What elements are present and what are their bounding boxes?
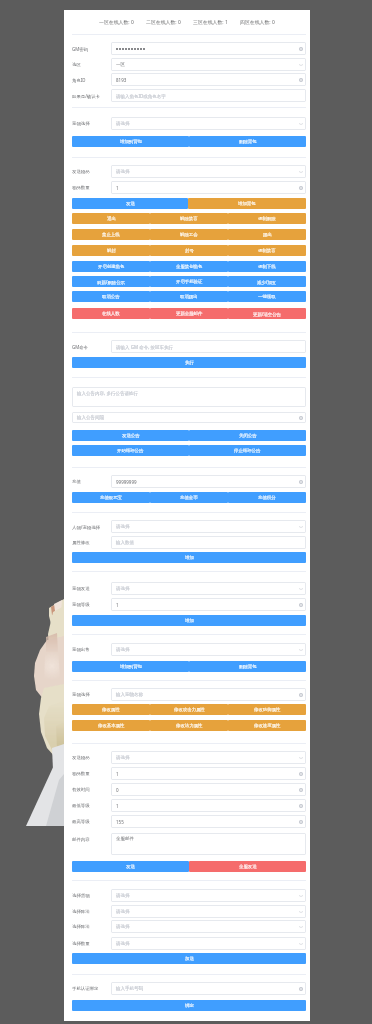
button[interactable]: 取消踢出 xyxy=(150,291,228,302)
staticText: 最低等级 xyxy=(72,803,90,809)
button[interactable]: 请选择 xyxy=(111,905,306,918)
button[interactable]: 解封 xyxy=(72,245,150,256)
staticText: 充值 xyxy=(72,479,81,485)
button[interactable]: 增加 xyxy=(72,552,306,563)
button[interactable]: 发送 xyxy=(72,198,188,209)
staticText: 增加 xyxy=(185,555,194,561)
button[interactable]: 解除工会 xyxy=(150,229,228,240)
button[interactable]: 封号 xyxy=(150,245,228,256)
button[interactable]: 减少/加五 xyxy=(228,276,306,287)
staticText: 三区在线人数: 1 xyxy=(193,19,228,26)
button[interactable]: 1 xyxy=(111,767,306,780)
button[interactable]: 请选择 xyxy=(111,889,306,902)
button[interactable]: 全服禁创角色 xyxy=(150,261,228,272)
button[interactable]: 在线人数 xyxy=(72,308,150,319)
button[interactable]: 加送 xyxy=(72,953,306,964)
button[interactable]: 修改基本属性 xyxy=(72,720,150,731)
staticText: 开启手机验证 xyxy=(176,279,203,285)
button[interactable]: 更新/清空公告 xyxy=(228,308,306,319)
button[interactable]: 踢出 xyxy=(228,229,306,240)
button[interactable]: 强制下线 xyxy=(228,261,306,272)
button[interactable]: 输入公告内容, 多行公告请换行 xyxy=(72,387,306,407)
button[interactable]: 禁止上线 xyxy=(72,229,150,240)
button[interactable]: 99999999 xyxy=(111,475,306,488)
staticText: 输入数值 xyxy=(116,540,134,546)
button[interactable]: 请选择 xyxy=(111,520,306,533)
button[interactable]: 开始循环公告 xyxy=(72,445,189,456)
button[interactable]: 全服邮件 xyxy=(111,833,306,855)
button[interactable]: 输入宠物名称 xyxy=(111,688,306,701)
staticText: 修改攻击力属性 xyxy=(174,707,205,713)
staticText: 发送 xyxy=(126,864,135,870)
button[interactable]: 充值积分 xyxy=(228,492,306,503)
button[interactable]: 绑定 xyxy=(72,1000,306,1011)
button[interactable]: 强制禁言 xyxy=(228,245,306,256)
button[interactable]: 请选择 xyxy=(111,643,306,656)
button[interactable]: 删除背包 xyxy=(189,661,306,672)
button[interactable]: 增加背包 xyxy=(188,198,306,209)
button[interactable]: 请选择 xyxy=(111,165,306,178)
button[interactable]: 1 xyxy=(111,799,306,812)
button[interactable]: 开启创建角色 xyxy=(72,261,150,272)
button[interactable]: 8193 xyxy=(111,73,306,86)
staticText: 输入公告间隔 xyxy=(77,415,104,421)
button[interactable]: 1 xyxy=(111,598,306,611)
button[interactable]: 发送公告 xyxy=(72,430,189,441)
button[interactable]: 1 xyxy=(111,181,306,194)
button[interactable]: 修改防御属性 xyxy=(228,704,306,715)
button[interactable]: 输入公告间隔 xyxy=(72,412,306,423)
staticText: 充值金币 xyxy=(180,495,198,501)
button[interactable]: 开启手机验证 xyxy=(150,276,228,287)
button[interactable]: 一区 xyxy=(111,58,306,71)
button[interactable]: 请输入 GM 命令, 按回车执行 xyxy=(111,340,306,353)
button[interactable]: 请选择 xyxy=(111,117,306,130)
button[interactable]: 解除禁言 xyxy=(150,213,228,224)
staticText: 修改法力属性 xyxy=(176,723,203,729)
staticText: 发送物品 xyxy=(72,169,90,175)
staticText: 停止循环公告 xyxy=(234,448,261,454)
staticText: 请选择 xyxy=(116,893,130,899)
staticText: 取消公告 xyxy=(102,294,120,300)
button[interactable]: 删除背包 xyxy=(189,136,306,147)
button[interactable]: 充值银元宝 xyxy=(72,492,150,503)
button[interactable]: 强制删除 xyxy=(228,213,306,224)
button[interactable]: 增加到背包 xyxy=(72,136,189,147)
staticText: 请选择 xyxy=(116,909,130,915)
staticText: 删除背包 xyxy=(239,139,257,145)
staticText: 充值银元宝 xyxy=(100,495,122,501)
button[interactable]: 修改速度属性 xyxy=(228,720,306,731)
button[interactable]: 关闭公告 xyxy=(189,430,306,441)
button[interactable]: 刷新/删除公示 xyxy=(72,276,150,287)
button[interactable]: 退出 xyxy=(72,213,150,224)
button[interactable]: 执行 xyxy=(72,357,306,368)
staticText: 开始循环公告 xyxy=(117,448,144,454)
button[interactable]: 请输入角色ID或角色名字 xyxy=(111,89,306,102)
staticText: 全服邮件 xyxy=(116,836,134,842)
button[interactable]: 输入手机号码 xyxy=(111,982,306,995)
button[interactable]: 修改属性 xyxy=(72,704,150,715)
button[interactable]: 输入数值 xyxy=(111,536,306,549)
staticText: 输入手机号码 xyxy=(116,986,143,992)
staticText: 选区 xyxy=(72,62,81,68)
button[interactable]: 充值金币 xyxy=(150,492,228,503)
button[interactable]: 增加 xyxy=(72,615,306,626)
button[interactable]: 增加到背包 xyxy=(72,661,189,672)
staticText: 1 xyxy=(116,771,119,777)
button[interactable]: 停止循环公告 xyxy=(189,445,306,456)
button[interactable]: 请选择 xyxy=(111,920,306,933)
button[interactable]: 修改法力属性 xyxy=(150,720,228,731)
button[interactable]: 全服发送 xyxy=(189,861,306,872)
button[interactable]: 请选择 xyxy=(111,937,306,950)
button[interactable] xyxy=(111,42,306,55)
button[interactable]: 0 xyxy=(111,783,306,796)
button[interactable]: 请选择 xyxy=(111,582,306,595)
staticText: 1 xyxy=(116,602,119,608)
button[interactable]: 取消公告 xyxy=(72,291,150,302)
button[interactable]: 请选择 xyxy=(111,751,306,764)
button[interactable]: 发送 xyxy=(72,861,189,872)
button[interactable]: 一键领取 xyxy=(228,291,306,302)
staticText: 删除背包 xyxy=(239,664,257,670)
button[interactable]: 更新全服邮件 xyxy=(150,308,228,319)
button[interactable]: 修改攻击力属性 xyxy=(150,704,228,715)
button[interactable]: 155 xyxy=(111,815,306,828)
